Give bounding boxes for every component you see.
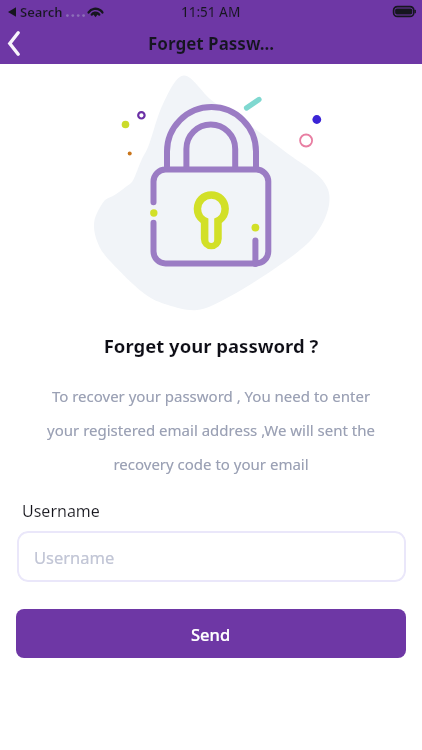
staticText: Username — [22, 500, 100, 522]
staticText: To recover your password , You need to e… — [0, 386, 422, 474]
staticText: Send — [191, 623, 231, 645]
button[interactable]: Back — [0, 25, 36, 61]
staticText: 11:51 AM — [181, 3, 241, 21]
staticText: Forget Passw... — [148, 32, 275, 55]
staticText: Search — [20, 3, 63, 21]
button[interactable]: Send — [16, 609, 406, 658]
staticText: Username — [34, 546, 115, 568]
button[interactable]: Username — [17, 531, 406, 582]
staticText: Forget your password ? — [0, 333, 422, 358]
